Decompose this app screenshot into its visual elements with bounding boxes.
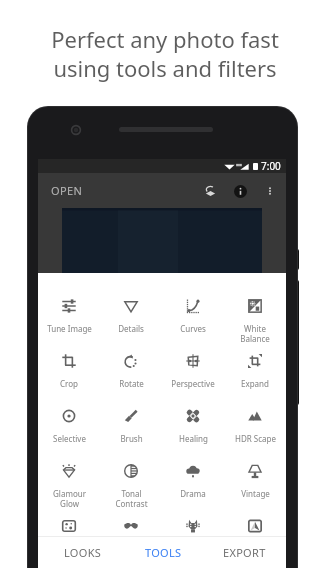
staticText: HDR Scape	[235, 433, 276, 444]
button[interactable]: EXPORT	[204, 536, 285, 568]
staticText: Details	[118, 323, 144, 334]
button[interactable]: Frames	[224, 513, 286, 541]
button[interactable]: Tonal Contrast	[100, 458, 162, 513]
staticText: Perspective	[171, 378, 215, 389]
button[interactable]: Details	[100, 293, 162, 348]
button[interactable]: Info	[232, 183, 248, 199]
button[interactable]: Perspective	[162, 348, 224, 403]
staticText: Brush	[120, 433, 143, 444]
staticText: TOOLS	[145, 545, 182, 560]
button[interactable]: Selective	[38, 403, 100, 458]
staticText: 7:00	[261, 159, 281, 173]
button[interactable]: Brush	[100, 403, 162, 458]
staticText: Curves	[180, 323, 206, 334]
button[interactable]: White Balance	[224, 293, 286, 348]
button[interactable]: More options	[263, 184, 277, 198]
button[interactable]: OPEN	[51, 183, 83, 198]
staticText: Tune Image	[47, 323, 92, 334]
button[interactable]: TOOLS	[123, 536, 204, 568]
button[interactable]: Tune Image	[38, 293, 100, 348]
button[interactable]: Undo	[201, 182, 219, 200]
button[interactable]: Expand	[224, 348, 286, 403]
button[interactable]: Curves	[162, 293, 224, 348]
staticText: EXPORT	[223, 545, 266, 560]
button[interactable]: Glamour Glow	[38, 458, 100, 513]
button[interactable]: Grunge	[162, 513, 224, 541]
staticText: Vintage	[241, 488, 270, 499]
button[interactable]: Crop	[38, 348, 100, 403]
staticText: Rotate	[119, 378, 144, 389]
staticText: White Balance	[240, 323, 270, 344]
staticText: OPEN	[51, 183, 83, 198]
staticText: Selective	[53, 433, 86, 444]
staticText: Tonal Contrast	[115, 488, 148, 509]
button[interactable]: Healing	[162, 403, 224, 458]
staticText: LOOKS	[64, 545, 102, 560]
staticText: Glamour Glow	[53, 488, 86, 509]
staticText: Healing	[179, 433, 208, 444]
button[interactable]: Drama	[162, 458, 224, 513]
staticText: Perfect any photo fast using tools and f…	[51, 24, 279, 83]
staticText: Crop	[60, 378, 78, 389]
staticText: Expand	[241, 378, 269, 389]
staticText: Drama	[180, 488, 206, 499]
button[interactable]: HDR Scape	[224, 403, 286, 458]
button[interactable]: LOOKS	[43, 536, 123, 568]
button[interactable]: Rotate	[100, 348, 162, 403]
button[interactable]: Grainy Film	[38, 513, 100, 541]
button[interactable]: Retrolux	[100, 513, 162, 541]
button[interactable]: Vintage	[224, 458, 286, 513]
